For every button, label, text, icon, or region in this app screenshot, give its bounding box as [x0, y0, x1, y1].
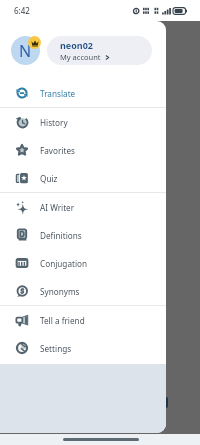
- button[interactable]: Settings: [0, 334, 166, 362]
- button[interactable]: Quiz: [0, 164, 166, 192]
- staticText: AI Writer: [40, 202, 75, 213]
- staticText: Synonyms: [40, 286, 80, 297]
- staticText: N: [19, 40, 32, 62]
- button[interactable]: History: [0, 108, 166, 136]
- staticText: Quiz: [40, 173, 58, 184]
- button[interactable]: Favorites: [0, 136, 166, 164]
- staticText: Favorites: [40, 145, 75, 156]
- button[interactable]: Translate: [0, 79, 166, 107]
- staticText: 6:42: [14, 5, 30, 16]
- staticText: History: [40, 117, 68, 128]
- button[interactable]: AI Writer: [0, 193, 166, 221]
- button[interactable]: neon02: [0, 21, 166, 79]
- button[interactable]: Synonyms: [0, 277, 166, 305]
- staticText: Settings: [40, 343, 72, 354]
- staticText: neon02: [60, 39, 93, 51]
- button[interactable]: Conjugation: [0, 249, 166, 277]
- staticText: Translate: [40, 88, 76, 99]
- staticText: My account: [60, 52, 101, 62]
- button[interactable]: Tell a friend: [0, 306, 166, 334]
- staticText: Definitions: [40, 230, 82, 241]
- staticText: Conjugation: [40, 258, 88, 269]
- button[interactable]: Definitions: [0, 221, 166, 249]
- staticText: Tell a friend: [40, 315, 85, 326]
